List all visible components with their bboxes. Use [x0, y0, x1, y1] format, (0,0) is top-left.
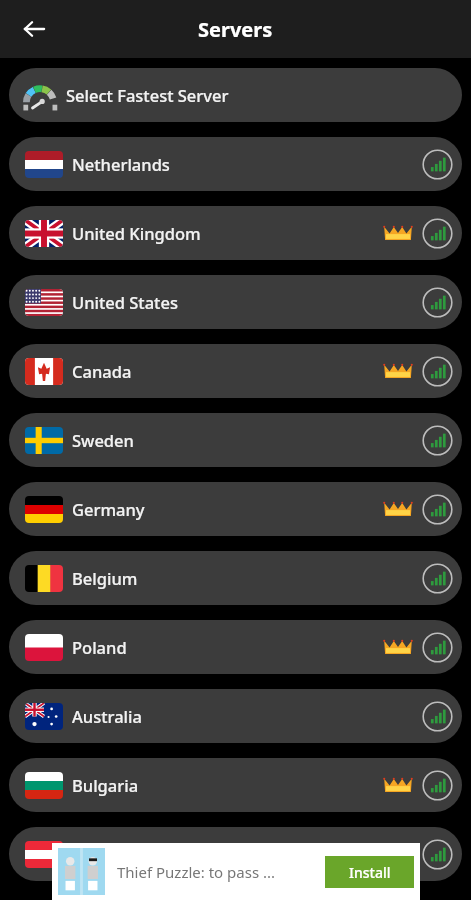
button[interactable]: Australia [9, 689, 462, 743]
button[interactable]: Austria [9, 827, 462, 881]
staticText: Poland [72, 636, 383, 658]
staticText: Thief Puzzle: to pass ... [117, 862, 319, 882]
button[interactable]: Bulgaria [9, 758, 462, 812]
staticText: United Kingdom [72, 222, 383, 244]
button[interactable]: Install [325, 856, 414, 888]
staticText: Canada [72, 360, 383, 382]
staticText: Sweden [72, 429, 422, 451]
button[interactable]: Netherlands [9, 137, 462, 191]
staticText: Bulgaria [72, 774, 383, 796]
staticText: Belgium [72, 567, 422, 589]
staticText: Install [349, 863, 391, 882]
button[interactable]: Canada [9, 344, 462, 398]
button[interactable]: Poland [9, 620, 462, 674]
button[interactable]: Belgium [9, 551, 462, 605]
button[interactable]: Sweden [9, 413, 462, 467]
staticText: United States [72, 291, 422, 313]
staticText: Select Fastest Server [66, 84, 229, 106]
button[interactable]: Germany [9, 482, 462, 536]
button[interactable]: Select Fastest Server [9, 68, 462, 122]
staticText: Netherlands [72, 153, 422, 175]
staticText: Austria [72, 843, 422, 865]
button[interactable]: Thief Puzzle: to pass ... [52, 843, 420, 900]
staticText: Germany [72, 498, 383, 520]
button[interactable]: Back [11, 6, 57, 52]
staticText: Australia [72, 705, 422, 727]
staticText: Servers [198, 16, 273, 43]
button[interactable]: United States [9, 275, 462, 329]
button[interactable]: United Kingdom [9, 206, 462, 260]
